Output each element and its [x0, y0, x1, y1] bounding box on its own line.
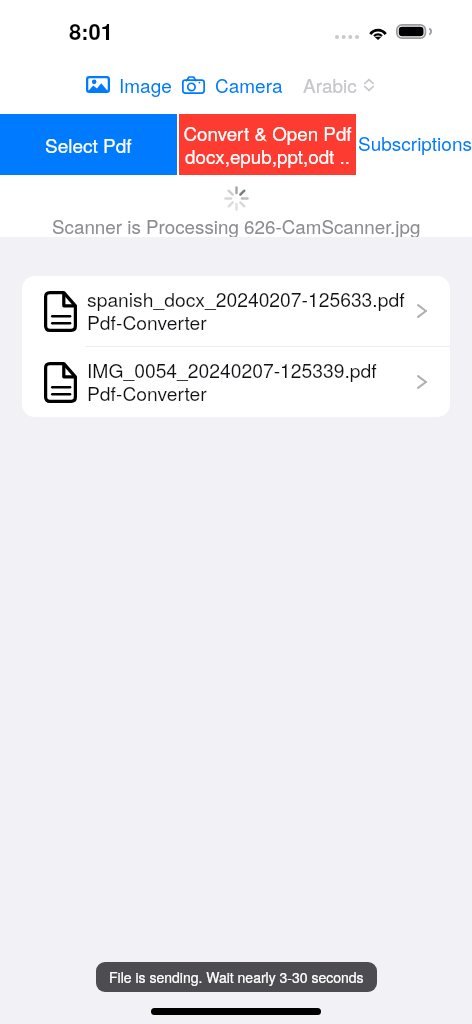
- button[interactable]: spanish_docx_20240207-125633.pdf Pdf-Con…: [22, 276, 450, 346]
- staticText: Scanner is Processing 626-CamScanner.jpg: [52, 212, 421, 237]
- button[interactable]: IMG_0054_20240207-125339.pdf Pdf-Convert…: [22, 347, 450, 417]
- button[interactable]: Arabic: [303, 71, 375, 98]
- staticText: Arabic: [303, 71, 357, 98]
- staticText: Subscriptions: [358, 129, 472, 156]
- staticText: File is sending. Wait nearly 3-30 second…: [109, 967, 364, 987]
- button[interactable]: Subscriptions: [356, 114, 472, 175]
- button[interactable]: Camera: [182, 71, 283, 98]
- button[interactable]: Convert & Open Pdf docx,epub,ppt,odt ..: [179, 114, 356, 175]
- staticText: Select Pdf: [45, 131, 132, 158]
- staticText: Image: [119, 71, 172, 98]
- staticText: Camera: [215, 71, 283, 98]
- staticText: spanish_docx_20240207-125633.pdf Pdf-Con…: [87, 285, 405, 335]
- staticText: IMG_0054_20240207-125339.pdf Pdf-Convert…: [87, 356, 377, 406]
- staticText: 8:01: [69, 15, 114, 47]
- button[interactable]: Select Pdf: [0, 114, 177, 175]
- staticText: Convert & Open Pdf docx,epub,ppt,odt ..: [183, 119, 352, 170]
- button[interactable]: Image: [86, 71, 172, 98]
